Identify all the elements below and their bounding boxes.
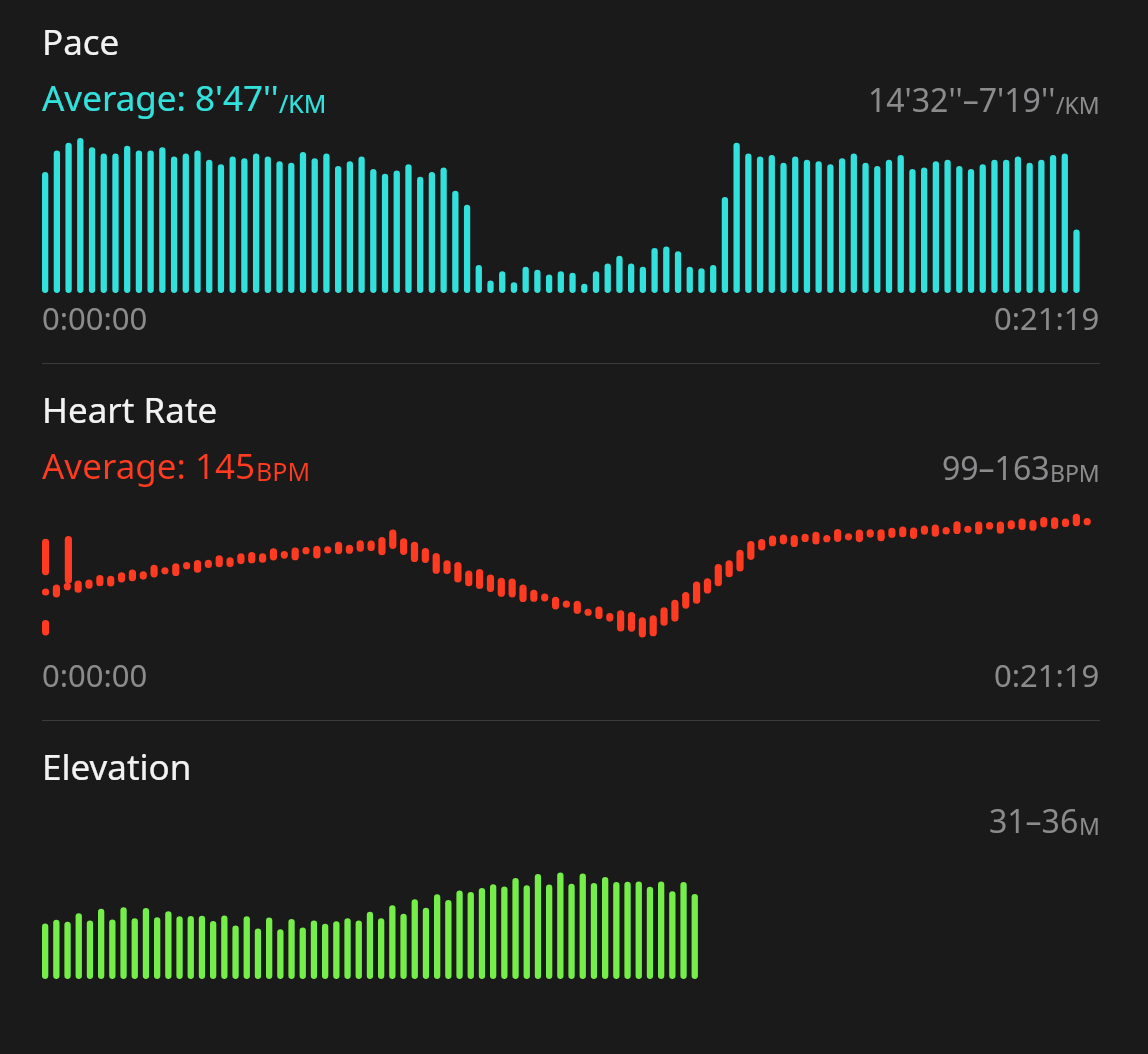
staticText: 99–163	[942, 446, 1050, 490]
staticText: Average: 145	[42, 442, 256, 490]
staticText: Pace	[42, 18, 120, 66]
staticText: BPM	[256, 454, 311, 488]
staticText: Average: 8'47''	[42, 74, 279, 122]
staticText: 31–36	[989, 799, 1079, 843]
staticText: BPM	[1050, 457, 1100, 488]
staticText: /KM	[279, 86, 327, 120]
staticText: 0:21:19	[994, 654, 1100, 696]
staticText: 0:00:00	[42, 297, 148, 339]
staticText: Heart Rate	[42, 386, 218, 434]
staticText: 14'32''–7'19''	[868, 78, 1056, 122]
staticText: 0:21:19	[994, 297, 1100, 339]
button[interactable]: Pace	[42, 0, 1100, 339]
button[interactable]: Heart Rate	[42, 386, 1100, 696]
button[interactable]: Elevation	[42, 743, 1100, 979]
staticText: M	[1079, 810, 1100, 841]
staticText: /KM	[1056, 89, 1100, 120]
staticText: 0:00:00	[42, 654, 148, 696]
staticText: Elevation	[42, 743, 192, 791]
